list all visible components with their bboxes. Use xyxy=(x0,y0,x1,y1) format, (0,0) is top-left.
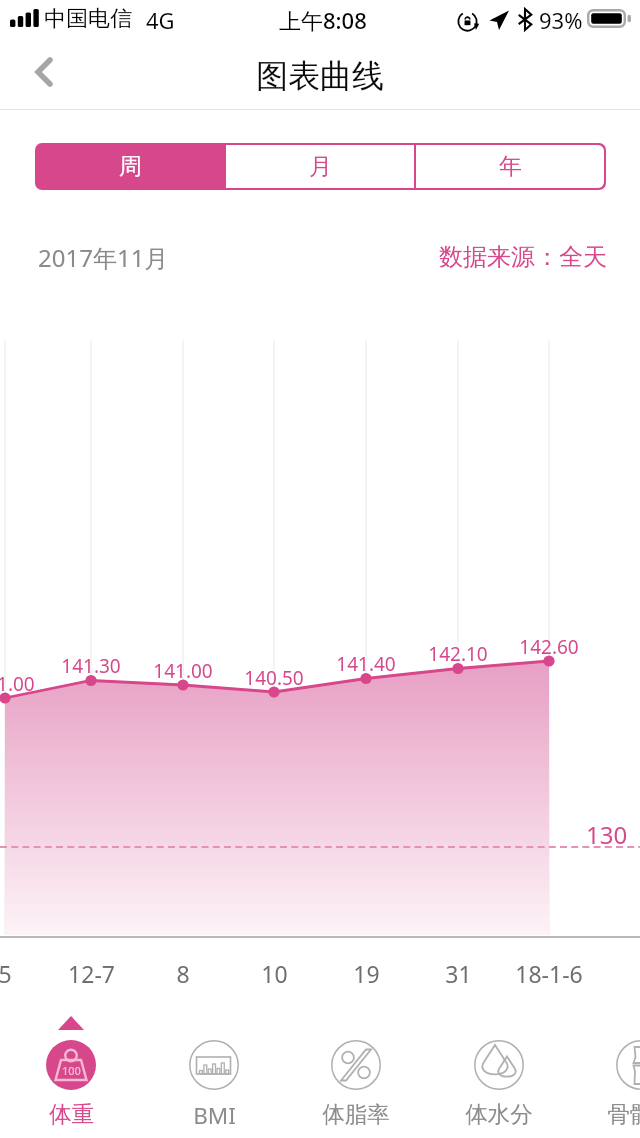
staticText: 月 xyxy=(309,152,332,181)
staticText: 142.10 xyxy=(428,641,488,667)
button[interactable]: 100 xyxy=(0,1008,142,1138)
staticText: 5 xyxy=(0,958,12,989)
staticText: 8 xyxy=(176,958,190,989)
staticText: 31 xyxy=(445,958,472,989)
staticText: 上午8:08 xyxy=(279,5,367,35)
staticText: 18-1-6 xyxy=(515,958,583,989)
staticText: 140.50 xyxy=(244,665,304,691)
staticText: 12-7 xyxy=(68,958,115,989)
staticText: 图表曲线 xyxy=(256,56,384,96)
staticText: 142.60 xyxy=(519,634,579,660)
button[interactable]: 年 xyxy=(416,145,604,188)
staticText: 2017年11月 xyxy=(38,241,169,274)
staticText: 130 xyxy=(586,818,628,851)
staticText: 4G xyxy=(146,5,175,35)
staticText: 19 xyxy=(353,958,380,989)
staticText: 141.40 xyxy=(336,651,396,677)
staticText: 93% xyxy=(539,5,583,35)
staticText: BMI xyxy=(193,1100,236,1131)
button[interactable]: 体脂率 xyxy=(285,1008,427,1138)
staticText: 数据来源：全天 xyxy=(439,242,607,272)
staticText: 年 xyxy=(499,152,522,181)
button[interactable]: Back xyxy=(20,48,68,96)
staticText: 骨骼肌 xyxy=(607,1100,640,1128)
button[interactable]: 月 xyxy=(226,145,414,188)
button[interactable]: BMI xyxy=(143,1008,285,1138)
staticText: 体重 xyxy=(49,1100,94,1128)
staticText: 141.30 xyxy=(61,653,121,679)
staticText: 中国电信 xyxy=(44,5,132,33)
staticText: 体水分 xyxy=(465,1100,533,1128)
staticText: 100 xyxy=(62,1063,81,1078)
button[interactable]: 骨骼肌 xyxy=(570,1008,640,1138)
staticText: 10 xyxy=(261,958,288,989)
staticText: 141.00 xyxy=(153,658,213,684)
button[interactable]: 体水分 xyxy=(428,1008,570,1138)
button[interactable]: 周 xyxy=(37,145,224,188)
staticText: 141.00 xyxy=(0,671,35,697)
staticText: 周 xyxy=(119,152,142,181)
staticText: 体脂率 xyxy=(322,1100,390,1128)
